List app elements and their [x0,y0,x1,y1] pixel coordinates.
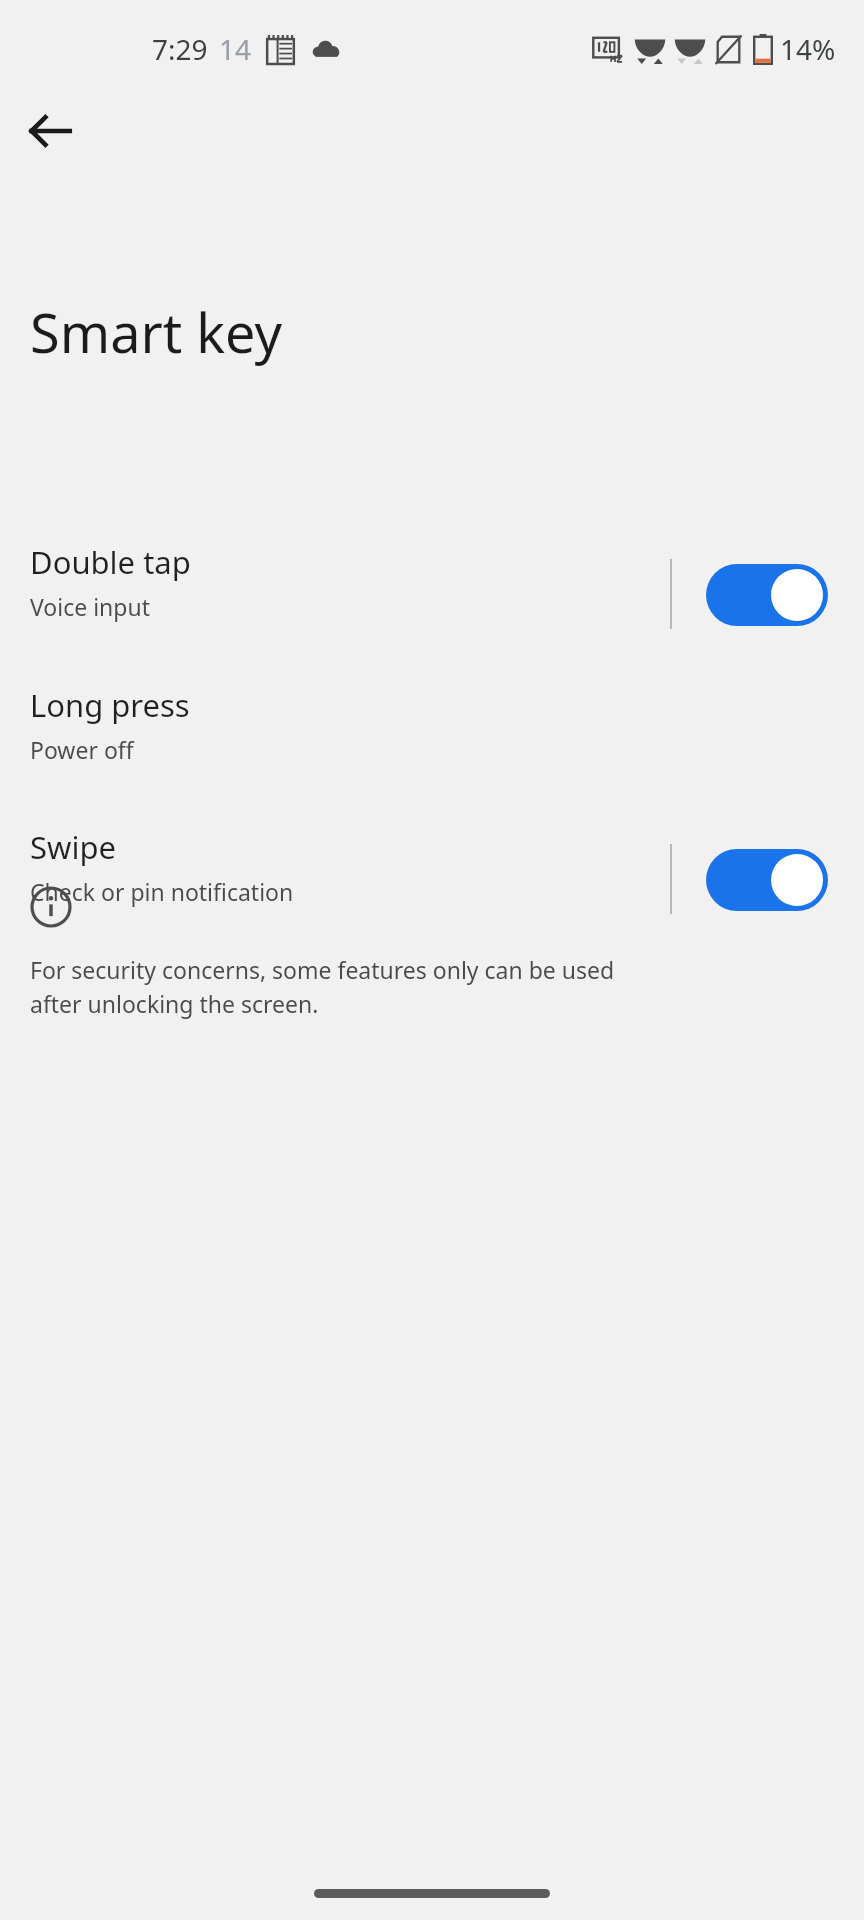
staticText: Long press [30,684,190,726]
staticText: For security concerns, some features onl… [30,954,660,1019]
staticText: 14% [780,30,836,68]
staticText: 14 [219,30,252,68]
button[interactable]: Swipe [0,810,864,952]
staticText: Check or pin notification [30,876,294,907]
button[interactable]: Double tap [0,525,864,667]
button[interactable]: Double tap toggle [694,547,840,643]
staticText: Smart key [30,295,283,369]
staticText: Double tap [30,541,191,583]
button[interactable]: Long press [0,668,864,810]
button[interactable]: Swipe toggle [694,832,840,928]
staticText: Swipe [30,826,116,868]
staticText: Power off [30,734,134,765]
staticText: Voice input [30,591,150,622]
button[interactable]: Back [8,89,92,173]
staticText: 7:29 [152,30,208,68]
